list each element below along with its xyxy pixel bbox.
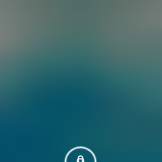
button[interactable]: Unlock: [0, 0, 162, 162]
